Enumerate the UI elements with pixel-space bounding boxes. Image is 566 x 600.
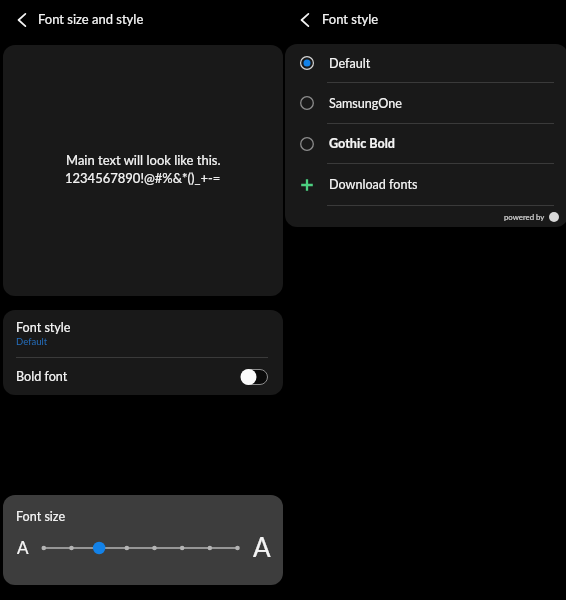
staticText: Font size and style (38, 11, 144, 27)
button[interactable]: SamsungOne (285, 83, 566, 123)
staticText: Download fonts (329, 177, 418, 192)
button[interactable]: Navigate up (295, 10, 315, 30)
staticText: A (253, 531, 271, 562)
staticText: Gothic Bold (329, 136, 396, 151)
button[interactable]: Default (285, 44, 566, 82)
staticText: Font style (322, 11, 379, 27)
button[interactable]: Font size slider (36, 539, 246, 557)
staticText: Default (16, 336, 48, 347)
button[interactable]: Gothic Bold (285, 124, 566, 163)
button[interactable]: Navigate up (12, 10, 32, 30)
button[interactable]: Bold font (3, 358, 283, 395)
staticText: SamsungOne (329, 96, 402, 111)
staticText: 1234567890!@#%&*()_+-= (65, 170, 221, 186)
button[interactable]: Font style (3, 310, 283, 357)
staticText: Default (329, 56, 371, 71)
staticText: Main text will look like this. (66, 152, 221, 168)
staticText: powered by (504, 212, 545, 221)
staticText: Font style (16, 320, 71, 335)
staticText: Font size (16, 509, 66, 524)
staticText: A (17, 537, 29, 557)
staticText: Bold font (16, 369, 68, 384)
button[interactable]: Download fonts (285, 164, 566, 205)
